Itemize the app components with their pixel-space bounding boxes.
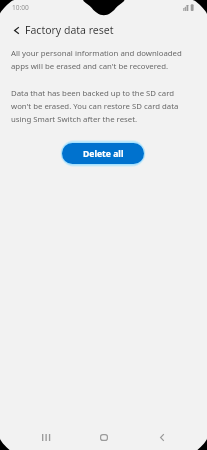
staticText: All your personal information and downlo… [11,48,196,71]
button[interactable]: Navigate up [6,20,26,40]
staticText: Data that has been backed up to the SD c… [11,88,196,124]
button[interactable]: Back [147,423,176,450]
button[interactable]: Home [89,423,118,450]
staticText: Delete all [83,148,124,160]
staticText: 10:00 [12,3,29,12]
staticText: Factory data reset [25,23,114,37]
button[interactable]: Recent apps [31,423,60,450]
button[interactable]: Delete all [62,143,144,164]
